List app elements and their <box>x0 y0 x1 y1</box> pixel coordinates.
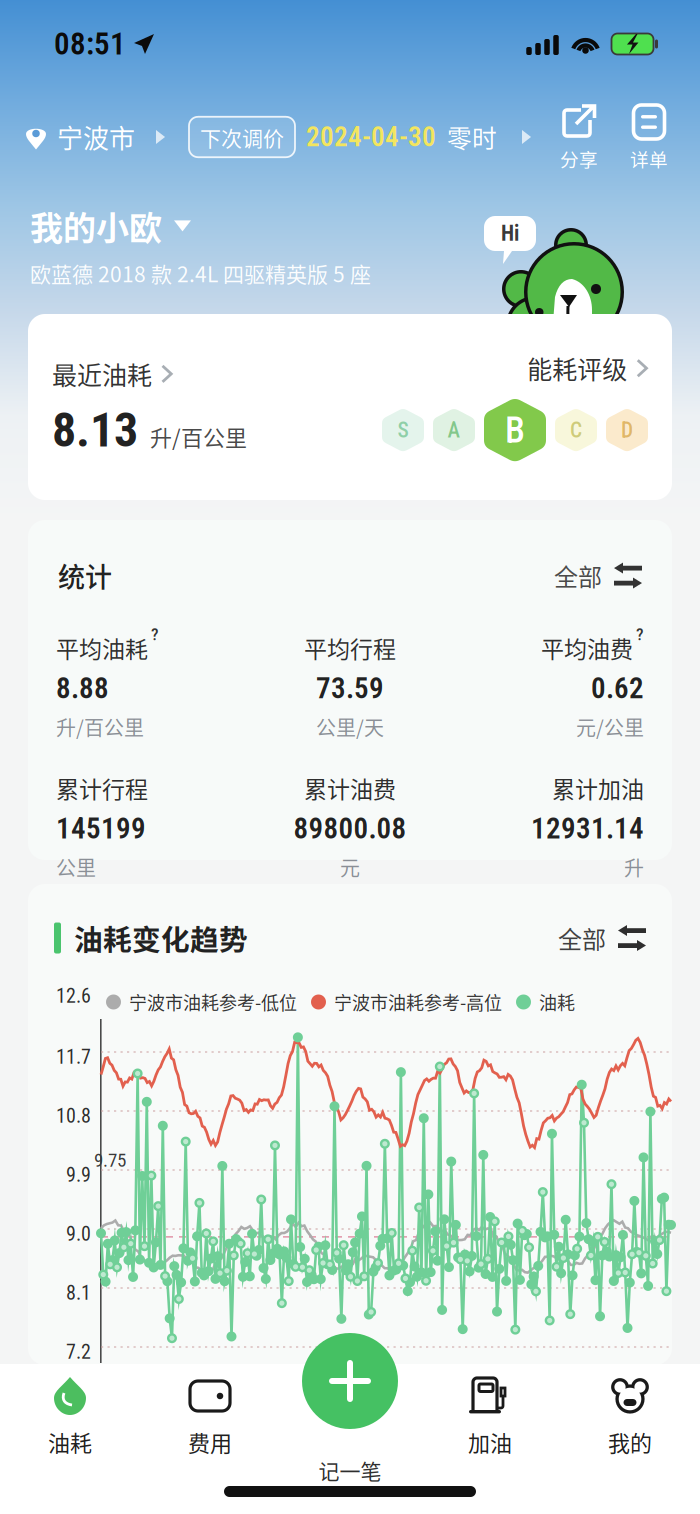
staticText: 73.59 <box>316 671 384 705</box>
staticText: 统计 <box>58 556 112 595</box>
button[interactable]: 全部 <box>558 921 646 955</box>
staticText: 加油 <box>468 1426 512 1458</box>
staticText: 升/百公里 <box>150 420 247 452</box>
staticText: 能耗评级 <box>527 350 627 386</box>
staticText: D <box>621 418 633 443</box>
staticText: B <box>505 409 525 451</box>
staticText: 89800.08 <box>293 812 406 846</box>
staticText: 我的 <box>608 1426 652 1458</box>
staticText: 升/百公里 <box>56 712 144 741</box>
staticText: 元 <box>340 853 360 882</box>
staticText: 宁波市油耗参考-高位 <box>334 989 502 1015</box>
staticText: 8.13 <box>52 402 138 458</box>
staticText: 9.0 <box>66 1222 91 1246</box>
staticText: 12.6 <box>56 984 91 1008</box>
staticText: S <box>397 418 408 443</box>
button[interactable]: 加油 <box>420 1376 560 1472</box>
staticText: 10.8 <box>56 1104 91 1128</box>
staticText: 宁波市 <box>57 118 135 156</box>
staticText: 08:51 <box>54 26 126 62</box>
staticText: 平均行程 <box>304 631 396 664</box>
staticText: 累计行程 <box>56 771 148 805</box>
staticText: 升 <box>624 853 644 882</box>
staticText: 详单 <box>630 145 668 172</box>
staticText: 最近油耗 <box>52 356 152 392</box>
staticText: 9.75 <box>94 1149 126 1171</box>
button[interactable]: 我的小欧 <box>30 202 191 250</box>
staticText: 11.7 <box>56 1045 91 1069</box>
staticText: 9.9 <box>66 1163 91 1187</box>
staticText: 全部 <box>554 558 602 593</box>
staticText: 8.1 <box>66 1281 91 1305</box>
staticText: 平均油费 <box>541 631 633 664</box>
staticText: 平均油耗 <box>56 631 148 664</box>
staticText: 8.88 <box>56 671 109 705</box>
staticText: Hi <box>501 221 519 246</box>
staticText: 公里 <box>56 853 96 882</box>
button[interactable]: 详单 <box>620 102 678 172</box>
staticText: 油耗变化趋势 <box>74 917 248 959</box>
button[interactable]: 记一笔 <box>302 1333 398 1429</box>
staticText: 油耗 <box>48 1426 92 1458</box>
staticText: 元/公里 <box>576 712 644 741</box>
button[interactable]: 全部 <box>554 558 642 593</box>
staticText: ? <box>636 624 644 644</box>
staticText: 2024-04-30 <box>306 121 436 153</box>
staticText: 145199 <box>56 812 146 846</box>
staticText: 欧蓝德 2018 款 2.4L 四驱精英版 5 座 <box>30 258 371 288</box>
staticText: 宁波市油耗参考-低位 <box>129 989 297 1015</box>
staticText: 油耗 <box>539 989 575 1015</box>
staticText: 我的小欧 <box>30 202 162 250</box>
staticText: 7.2 <box>66 1340 91 1364</box>
staticText: 记一笔 <box>318 1455 381 1485</box>
staticText: 公里/天 <box>316 712 384 741</box>
staticText: 分享 <box>560 145 598 172</box>
button[interactable]: 分享 <box>550 102 608 172</box>
staticText: C <box>570 418 582 443</box>
staticText: 0.62 <box>591 671 644 705</box>
button[interactable]: 最近油耗 <box>28 314 672 500</box>
button[interactable]: 下次调价 <box>175 100 531 174</box>
button[interactable]: 油耗 <box>0 1376 140 1472</box>
staticText: 累计油费 <box>304 771 396 805</box>
staticText: 全部 <box>558 921 606 955</box>
button[interactable]: 我的 <box>560 1376 700 1472</box>
button[interactable]: 宁波市 <box>0 100 175 174</box>
staticText: A <box>447 418 460 443</box>
staticText: 12931.14 <box>531 812 644 846</box>
staticText: 下次调价 <box>200 122 284 152</box>
staticText: 费用 <box>188 1426 232 1458</box>
staticText: 累计加油 <box>552 771 644 805</box>
staticText: ? <box>151 624 159 644</box>
staticText: 零时 <box>447 119 497 155</box>
button[interactable]: 费用 <box>140 1376 280 1472</box>
